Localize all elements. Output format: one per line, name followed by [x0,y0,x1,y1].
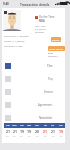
staticText: FRI [44,124,47,127]
staticText: 4 Y [13,135,16,138]
button[interactable]: Apply cancel [48,46,65,51]
staticText: Trip [48,77,53,81]
button[interactable]: Pickup [51,37,61,42]
staticText: 4 Y [28,135,31,138]
staticText: SUN [59,124,63,127]
staticText: THU [35,124,39,127]
staticText: Plan [47,64,53,68]
staticText: 4 Y [52,135,55,138]
staticText: On the Time [39,15,55,19]
staticText: 21 [51,129,55,134]
staticText: 9:40 [3,2,9,6]
staticText: Pickup [52,38,60,41]
staticText: 4 Y [6,135,9,138]
staticText: MON [12,124,17,127]
staticText: Training $ [48,55,59,58]
staticText: SUN [6,124,10,127]
staticText: Terminal [35,31,44,34]
staticText: Apply cancel [49,47,64,50]
button[interactable]: Agreement [2,98,65,111]
staticText: 19 [27,129,31,134]
staticText: Service [44,90,53,94]
staticText: 4 Y [44,135,47,138]
staticText: VBG : join .. [35,25,48,28]
staticText: 20 [35,129,39,134]
staticText: 19 [59,129,63,134]
staticText: 4 Y [36,135,39,138]
button[interactable]: Newsletter [2,111,65,124]
staticText: Salary: $ 1,480.00 [4,39,25,42]
staticText: 21 [13,129,17,134]
staticText: Contract: 6 Mon [4,44,23,47]
staticText: Book [48,52,54,55]
button[interactable]: Trip [2,72,65,85]
button[interactable]: Plan [2,59,65,72]
staticText: WED [27,124,32,127]
staticText: $ 5,250.00 [35,28,46,31]
staticText: Agreement [38,103,53,107]
staticText: 4 Y [20,135,23,138]
staticText: 4 Y [60,135,63,138]
staticText: Price (Hrs): $ 245,000 [4,34,29,37]
staticText: MBA [39,19,45,22]
staticText: TUE [20,124,24,127]
staticText: Transaction details [20,3,50,7]
staticText: 21 [43,129,47,134]
staticText: Newsletter [39,116,53,120]
staticText: 21 [6,129,10,134]
staticText: SAT [51,124,55,127]
button[interactable]: Service [2,85,65,98]
staticText: 19 [20,129,24,134]
